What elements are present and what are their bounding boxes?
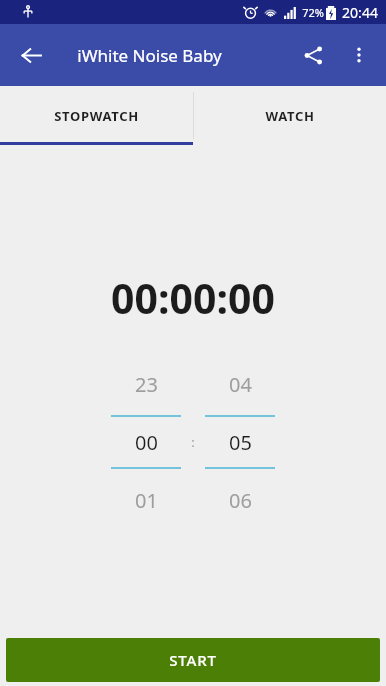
staticText: 23 bbox=[135, 371, 158, 398]
button[interactable]: STOPWATCH bbox=[0, 86, 193, 145]
staticText: 06 bbox=[229, 487, 252, 514]
staticText: START bbox=[169, 650, 217, 670]
staticText: 00 bbox=[135, 429, 158, 456]
button[interactable]: Share bbox=[290, 32, 336, 78]
button[interactable]: Back bbox=[8, 32, 54, 78]
staticText: STOPWATCH bbox=[54, 107, 139, 125]
button[interactable]: 04 bbox=[205, 364, 275, 404]
button[interactable]: 05 bbox=[205, 417, 275, 467]
staticText: 04 bbox=[229, 371, 252, 398]
button[interactable]: 23 bbox=[111, 364, 181, 404]
staticText: 00:00:00 bbox=[111, 270, 275, 326]
staticText: WATCH bbox=[265, 107, 315, 125]
staticText: 72% bbox=[302, 5, 324, 20]
staticText: 05 bbox=[229, 429, 252, 456]
button[interactable]: More options bbox=[336, 32, 382, 78]
button[interactable]: START bbox=[6, 638, 380, 682]
staticText: : bbox=[191, 433, 195, 451]
button[interactable]: 00 bbox=[111, 417, 181, 467]
staticText: 20:44 bbox=[342, 3, 378, 22]
staticText: 01 bbox=[135, 487, 158, 514]
staticText: iWhite Noise Baby bbox=[77, 44, 222, 67]
button[interactable]: 01 bbox=[111, 480, 181, 520]
button[interactable]: 06 bbox=[205, 480, 275, 520]
button[interactable]: WATCH bbox=[193, 86, 386, 145]
